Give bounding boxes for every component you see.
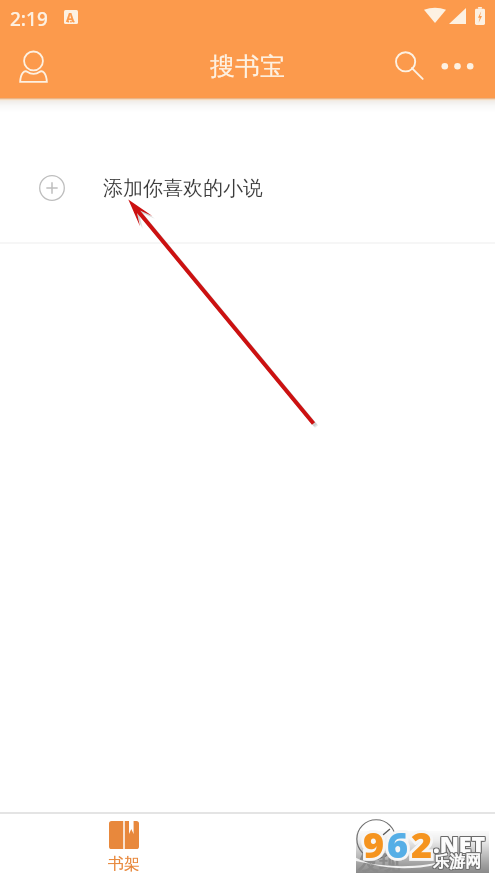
staticText: 乐游网 (433, 852, 481, 872)
staticText: 乐游网 (434, 853, 482, 873)
button[interactable]: Search (385, 42, 431, 90)
staticText: 乐游网 (432, 853, 480, 873)
staticText: .NET (433, 829, 486, 860)
staticText: 乐游网 (433, 851, 481, 871)
staticText: 2 (411, 820, 433, 869)
staticText: .NET (433, 827, 486, 858)
staticText: 2 (411, 820, 433, 869)
button[interactable]: Account (11, 42, 55, 90)
staticText: 书架 (108, 854, 140, 874)
staticText: 9 (363, 820, 385, 869)
staticText: A (66, 9, 75, 23)
staticText: 9 (363, 820, 385, 869)
staticText: 6 (387, 820, 409, 869)
staticText: .NET (432, 827, 485, 858)
staticText: 乐游网 (432, 852, 480, 872)
staticText: 乐游网 (433, 853, 481, 873)
staticText: .NET (434, 827, 487, 858)
staticText: 搜书宝 (210, 51, 285, 82)
button[interactable]: 添加你喜欢的小说 (0, 112, 495, 244)
staticText: 乐游网 (432, 851, 480, 871)
button[interactable]: 书架 (62, 814, 185, 880)
staticText: .NET (433, 828, 486, 859)
staticText: 6 (387, 820, 409, 869)
staticText: 发现 (358, 850, 400, 876)
staticText: 2:19 (10, 6, 48, 32)
staticText: .NET (434, 828, 487, 859)
staticText: .NET (434, 829, 487, 860)
staticText: .NET (432, 829, 485, 860)
staticText: .NET (432, 828, 485, 859)
staticText: 乐游网 (434, 852, 482, 872)
staticText: 乐游网 (434, 851, 482, 871)
staticText: 添加你喜欢的小说 (103, 176, 263, 201)
button[interactable]: More options (434, 42, 480, 90)
